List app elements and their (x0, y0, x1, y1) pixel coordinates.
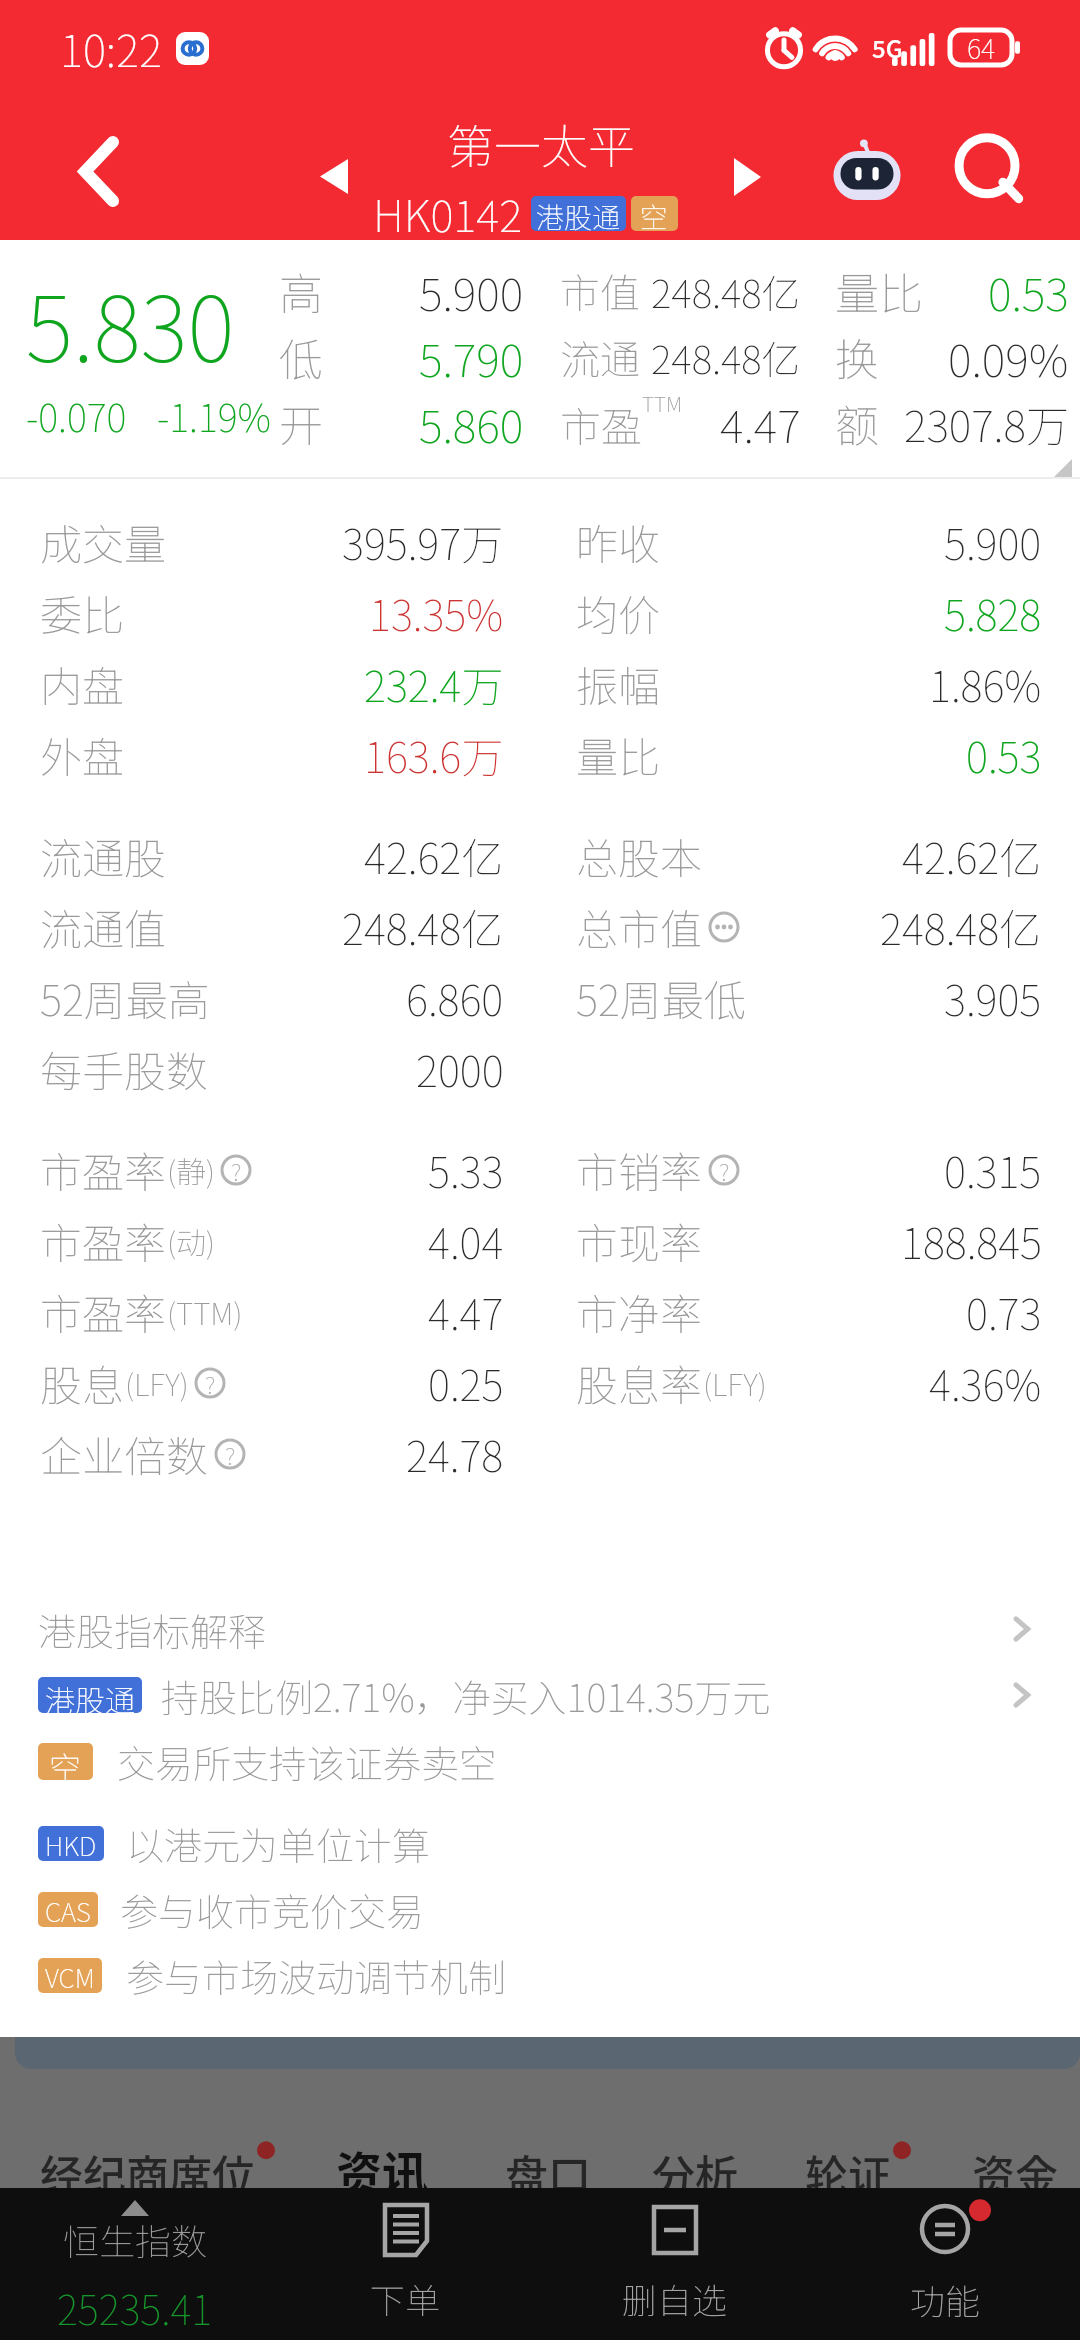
staticText: 删自选 (622, 2273, 728, 2324)
staticText: 市盈率 (40, 1210, 167, 1271)
staticText: 每手股数 (40, 1038, 209, 1099)
staticText: 5.790 (419, 325, 524, 390)
button[interactable]: 港股指标解释 (38, 1596, 1042, 1662)
staticText: 流通值 (40, 896, 167, 957)
button[interactable]: 流通值 (0, 891, 1080, 962)
staticText: ? (231, 1153, 242, 1187)
staticText: 内盘 (40, 653, 125, 714)
button[interactable]: 外盘 (0, 719, 1080, 790)
button[interactable]: 恒生指数 (0, 2188, 270, 2340)
staticText: 0.53 (988, 259, 1069, 324)
staticText: 市净率 (576, 1281, 703, 1342)
staticText: 市盈率 (40, 1139, 167, 1200)
staticText: (动) (167, 1219, 215, 1262)
staticText: 委比 (40, 582, 125, 643)
button[interactable]: 轮证 (805, 2108, 891, 2204)
staticText: 4.47 (720, 391, 801, 456)
staticText: 0.09% (948, 325, 1069, 390)
staticText: 3.905 (944, 967, 1042, 1028)
button[interactable]: 经纪商席位 (40, 2108, 255, 2204)
staticText: 232.4万 (364, 653, 504, 714)
staticText: 市值 (560, 262, 640, 320)
staticText: 昨收 (576, 511, 661, 572)
staticText: 低 (279, 325, 323, 389)
staticText: 248.48亿 (651, 263, 801, 319)
staticText: 24.78 (406, 1423, 504, 1484)
button[interactable]: 下单 (270, 2188, 540, 2340)
staticText: 5.830 (26, 258, 235, 388)
staticText: HKD (45, 1826, 97, 1861)
staticText: 248.48亿 (342, 896, 504, 957)
staticText: ? (225, 1437, 236, 1471)
staticText: 0.53 (966, 724, 1042, 785)
staticText: 0.25 (428, 1352, 504, 1413)
staticText: 港股通 (536, 196, 621, 231)
button[interactable]: 市盈率 (0, 1134, 1080, 1205)
staticText: 量比 (835, 259, 923, 323)
staticText: 4.04 (428, 1210, 504, 1271)
button[interactable]: 股息 (0, 1347, 1080, 1418)
button[interactable]: 52周最高 (0, 962, 1080, 1033)
staticText: 资金 (972, 2142, 1058, 2204)
button[interactable]: 内盘 (0, 648, 1080, 719)
staticText: 总股本 (576, 825, 703, 886)
staticText: 188.845 (901, 1210, 1042, 1271)
staticText: 均价 (576, 582, 661, 643)
button[interactable]: 市盈率 (0, 1205, 1080, 1276)
button[interactable]: 市盈率 (0, 1276, 1080, 1347)
staticText: 参与市场波动调节机制 (126, 1948, 507, 2003)
button[interactable]: Back (0, 92, 190, 240)
staticText: 空 (640, 196, 669, 231)
staticText: 2307.8万 (904, 392, 1069, 454)
staticText: 外盘 (40, 724, 125, 785)
staticText: 13.35% (369, 582, 504, 643)
staticText: 395.97万 (342, 511, 504, 572)
button[interactable]: 分析 (652, 2108, 738, 2204)
staticText: 企业倍数 (40, 1423, 209, 1484)
staticText: 5.33 (428, 1139, 504, 1200)
staticText: 0.315 (944, 1139, 1042, 1200)
staticText: 4.36% (929, 1352, 1042, 1413)
staticText: 163.6万 (364, 724, 504, 785)
staticText: 下单 (370, 2273, 441, 2324)
button[interactable]: 盘口 (505, 2108, 591, 2204)
button[interactable]: 删自选 (540, 2188, 810, 2340)
staticText: (TTM) (167, 1290, 243, 1333)
staticText: 248.48亿 (880, 896, 1042, 957)
staticText: 以港元为单位计算 (126, 1816, 431, 1871)
staticText: (LFY) (703, 1361, 767, 1404)
staticText: 5G (872, 30, 903, 65)
staticText: 市盈率 (40, 1281, 167, 1342)
button[interactable]: 资讯 (336, 2108, 428, 2204)
staticText: 248.48亿 (651, 329, 801, 385)
button[interactable]: AI assistant (808, 98, 926, 246)
button[interactable]: 每手股数 (0, 1033, 1080, 1104)
staticText: 市现率 (576, 1210, 703, 1271)
button[interactable]: 港股通 (38, 1662, 1042, 1728)
staticText: HK0142 (373, 181, 523, 245)
button[interactable]: 资金 (972, 2108, 1058, 2204)
staticText: 分析 (652, 2142, 738, 2204)
staticText: 市盈 (560, 394, 642, 453)
staticText: 52周最低 (576, 967, 746, 1028)
staticText: 42.62亿 (902, 825, 1042, 886)
staticText: 港股通 (45, 1677, 135, 1713)
button[interactable]: 委比 (0, 577, 1080, 648)
staticText: 1.86% (929, 653, 1042, 714)
button[interactable]: 流通股 (0, 820, 1080, 891)
staticText: ? (719, 1153, 730, 1187)
staticText: 高 (279, 259, 323, 323)
staticText: (静) (167, 1148, 215, 1191)
button[interactable]: 成交量 (0, 506, 1080, 577)
staticText: -0.070 (26, 388, 127, 443)
staticText: 盘口 (505, 2142, 591, 2204)
staticText: 股息率 (576, 1352, 703, 1413)
staticText: 参与收市竞价交易 (120, 1882, 425, 1937)
staticText: 流通 (560, 328, 640, 386)
button[interactable]: Search (926, 97, 1056, 245)
staticText: 开 (279, 391, 323, 455)
button[interactable]: 功能 (810, 2188, 1080, 2340)
staticText: 10:22 (60, 16, 162, 80)
staticText: 量比 (576, 724, 661, 785)
button[interactable]: 企业倍数 (0, 1418, 1080, 1489)
